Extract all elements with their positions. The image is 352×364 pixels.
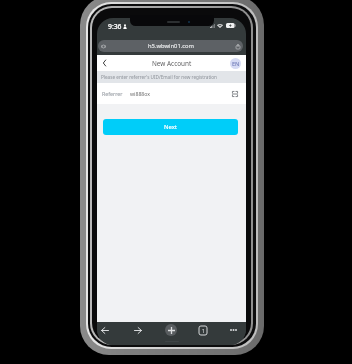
button[interactable]: Tabs: [197, 324, 209, 336]
staticText: New Account: [152, 59, 192, 68]
button[interactable]: Forward: [132, 324, 144, 336]
staticText: EN: [232, 60, 240, 68]
staticText: 9:36: [108, 22, 122, 31]
button[interactable]: New tab: [165, 324, 177, 336]
staticText: h5.wbwin01.com: [148, 42, 194, 50]
button[interactable]: More options: [227, 324, 239, 336]
staticText: 1: [202, 328, 205, 334]
staticText: Next: [164, 123, 177, 131]
button[interactable]: Back: [97, 55, 111, 71]
button[interactable]: h5.wbwin01.com: [98, 40, 243, 52]
button[interactable]: Next: [103, 119, 238, 135]
button[interactable]: Back: [99, 324, 111, 336]
button[interactable]: Scan QR code: [230, 89, 239, 98]
staticText: Please enter referrer's UID/Email for ne…: [101, 74, 217, 80]
staticText: wi888ox: [130, 90, 151, 97]
button[interactable]: EN: [230, 58, 241, 69]
staticText: Referrer: [102, 90, 123, 97]
button[interactable]: Referrer: [97, 83, 246, 104]
